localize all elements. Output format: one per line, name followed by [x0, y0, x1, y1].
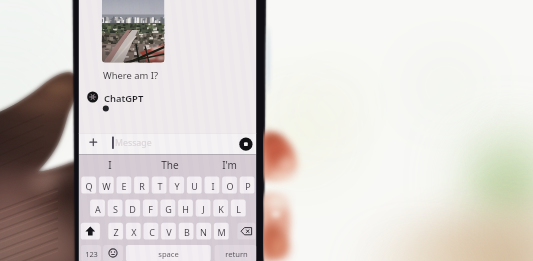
- button[interactable]: B: [179, 223, 194, 240]
- button[interactable]: K: [213, 200, 228, 217]
- staticText: R: [139, 180, 145, 192]
- staticText: Z: [113, 226, 119, 238]
- staticText: T: [157, 180, 163, 192]
- staticText: S: [113, 203, 118, 215]
- button[interactable]: I'm: [209, 156, 249, 174]
- staticText: H: [182, 203, 189, 215]
- staticText: K: [218, 203, 224, 215]
- button[interactable]: N: [196, 223, 211, 240]
- staticText: Where am I?: [103, 69, 159, 82]
- button[interactable]: O: [222, 177, 237, 194]
- staticText: M: [217, 226, 226, 238]
- button[interactable]: M: [214, 223, 229, 240]
- button[interactable]: Z: [108, 223, 123, 240]
- button[interactable]: D: [125, 200, 140, 217]
- button[interactable]: A: [90, 200, 105, 217]
- staticText: I'm: [222, 158, 237, 172]
- staticText: W: [102, 180, 111, 192]
- staticText: Y: [174, 180, 180, 192]
- button[interactable]: W: [99, 177, 114, 194]
- staticText: E: [121, 180, 127, 192]
- staticText: G: [165, 203, 172, 215]
- button[interactable]: X: [126, 223, 141, 240]
- button[interactable]: R: [134, 177, 149, 194]
- button[interactable]: I: [90, 156, 129, 174]
- button[interactable]: G: [161, 200, 176, 217]
- staticText: J: [202, 203, 205, 215]
- button[interactable]: L: [231, 200, 246, 217]
- button[interactable]: T: [152, 177, 167, 194]
- button[interactable]: V: [161, 223, 176, 240]
- button[interactable]: Q: [81, 177, 96, 194]
- staticText: ChatGPT: [104, 92, 144, 105]
- staticText: A: [95, 203, 101, 215]
- staticText: C: [149, 226, 155, 238]
- button[interactable]: Y: [169, 177, 184, 194]
- staticText: U: [191, 180, 198, 192]
- staticText: F: [148, 203, 153, 215]
- staticText: X: [131, 226, 137, 238]
- staticText: space: [158, 249, 179, 259]
- staticText: B: [184, 226, 190, 238]
- button[interactable]: J: [196, 200, 211, 217]
- staticText: I: [211, 180, 215, 192]
- staticText: D: [129, 203, 136, 215]
- button[interactable]: Stop generating: [239, 138, 252, 151]
- button[interactable]: E: [116, 177, 131, 194]
- staticText: N: [200, 226, 207, 238]
- button[interactable]: P: [240, 177, 255, 194]
- staticText: The: [161, 158, 179, 172]
- staticText: Message: [115, 137, 152, 149]
- staticText: P: [245, 180, 251, 192]
- staticText: L: [236, 203, 241, 215]
- button[interactable]: Add attachment: [87, 136, 100, 149]
- staticText: V: [166, 226, 172, 238]
- staticText: O: [226, 180, 234, 192]
- staticText: Q: [85, 180, 93, 192]
- button[interactable]: H: [178, 200, 193, 217]
- button[interactable]: F: [143, 200, 158, 217]
- staticText: 123: [85, 249, 98, 259]
- button[interactable]: Shift: [81, 223, 100, 240]
- button[interactable]: C: [144, 223, 159, 240]
- button[interactable]: S: [108, 200, 123, 217]
- button[interactable]: Backspace: [237, 223, 255, 240]
- button[interactable]: U: [187, 177, 202, 194]
- staticText: I: [108, 158, 112, 172]
- button[interactable]: space: [126, 245, 211, 261]
- button[interactable]: return: [215, 245, 257, 261]
- staticText: return: [225, 249, 248, 259]
- button[interactable]: The: [150, 156, 190, 174]
- button[interactable]: I: [205, 177, 220, 194]
- button[interactable]: 123: [81, 245, 101, 261]
- button[interactable]: Emoji: [103, 245, 123, 261]
